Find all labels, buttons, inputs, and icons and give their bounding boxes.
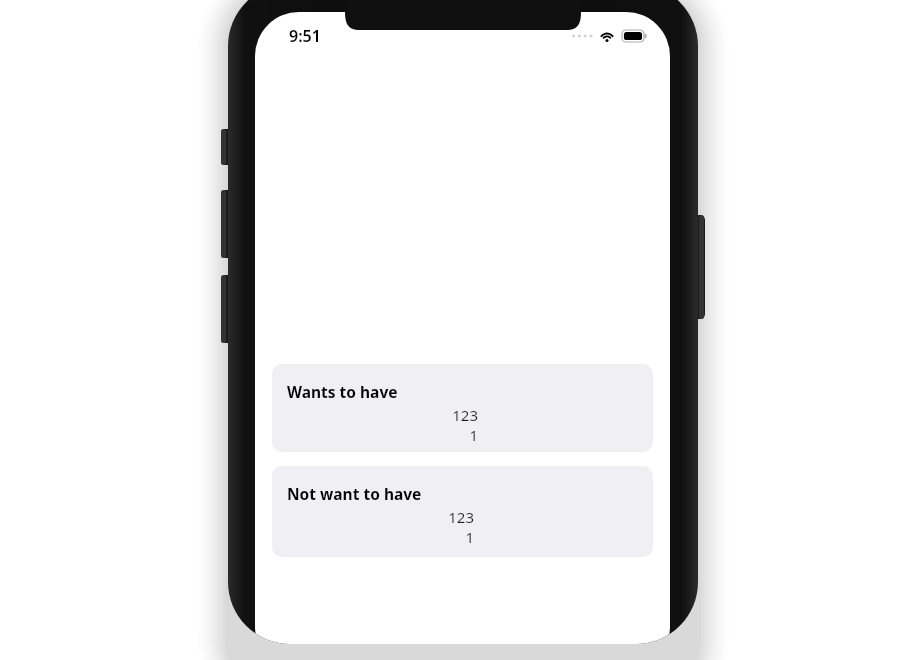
staticText: 1 — [465, 527, 474, 547]
staticText: 123 — [452, 405, 478, 425]
staticText: 9:51 — [289, 25, 321, 47]
button[interactable]: Wants to have — [272, 364, 653, 452]
staticText: Not want to have — [287, 483, 422, 504]
staticText: Wants to have — [287, 381, 398, 402]
staticText: 1 — [469, 425, 478, 445]
button[interactable]: Not want to have — [272, 466, 653, 557]
staticText: 123 — [448, 507, 474, 527]
